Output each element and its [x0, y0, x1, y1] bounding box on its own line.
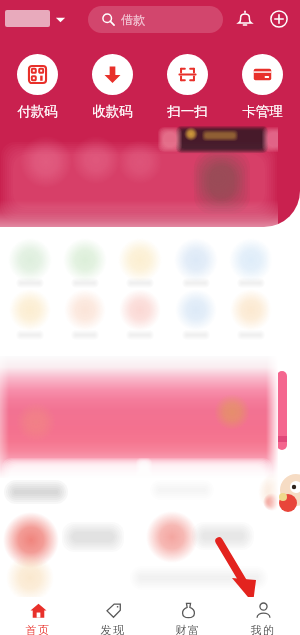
button[interactable]: Add: [265, 5, 293, 33]
staticText: 扫一扫: [167, 103, 208, 120]
button[interactable]: Account: [5, 10, 66, 27]
staticText: 借款: [121, 12, 145, 27]
staticText: 发现: [100, 623, 126, 635]
staticText: 首页: [25, 623, 51, 635]
button[interactable]: 卡管理: [225, 54, 300, 120]
button[interactable]: 扫一扫: [150, 54, 225, 120]
button[interactable]: 借款: [88, 6, 223, 33]
button[interactable]: 财富: [150, 597, 225, 635]
button[interactable]: 付款码: [0, 54, 75, 120]
button[interactable]: Notifications: [231, 5, 259, 33]
staticText: 收款码: [92, 103, 133, 120]
staticText: 财富: [175, 623, 201, 635]
staticText: 卡管理: [242, 103, 283, 120]
button[interactable]: 发现: [75, 597, 150, 635]
button[interactable]: 我的: [225, 597, 300, 635]
button[interactable]: 收款码: [75, 54, 150, 120]
staticText: 我的: [250, 623, 276, 635]
staticText: 付款码: [17, 103, 58, 120]
button[interactable]: 首页: [0, 597, 75, 635]
